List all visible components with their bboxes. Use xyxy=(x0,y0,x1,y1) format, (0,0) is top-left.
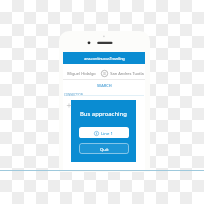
button[interactable]: SEARCH xyxy=(63,82,145,89)
staticText: Miguel Hidalgo xyxy=(67,71,96,76)
button[interactable]: ana.continuousTraveling xyxy=(63,52,145,64)
button[interactable]: Swap origin and destination xyxy=(100,69,109,78)
staticText: Quit xyxy=(100,146,109,152)
staticText: CONNECTION xyxy=(64,93,83,97)
button[interactable]: Line 1 xyxy=(79,127,129,138)
staticText: SEARCH xyxy=(97,83,112,88)
staticText: Line 1 xyxy=(101,130,114,136)
staticText: San Andres Tuxtla xyxy=(110,71,144,76)
button[interactable]: Quit xyxy=(79,143,129,154)
staticText: ana.continuousTraveling xyxy=(84,56,125,61)
button[interactable]: San Andres Tuxtla xyxy=(109,66,145,80)
button[interactable]: Miguel Hidalgo xyxy=(63,66,100,80)
staticText: Bus approaching xyxy=(80,110,127,118)
